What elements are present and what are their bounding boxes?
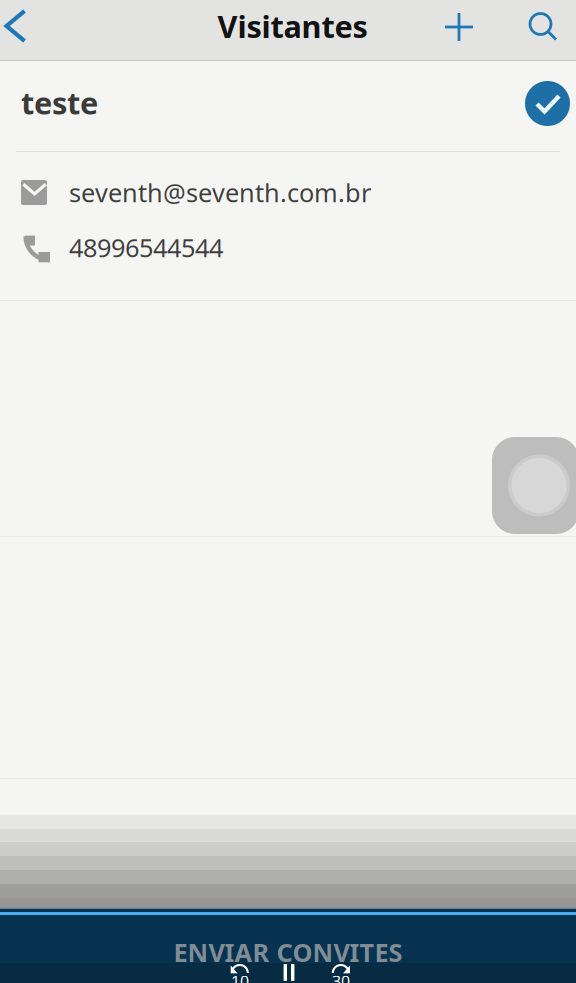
staticText: teste (21, 82, 98, 123)
button[interactable]: Search (515, 0, 576, 61)
button[interactable]: Pause (278, 964, 299, 983)
staticText: seventh@seventh.com.br (69, 176, 371, 209)
button[interactable]: Add (429, 0, 515, 61)
button[interactable]: ENVIAR CONVITES (0, 921, 576, 969)
button[interactable]: Confirmed (525, 81, 570, 131)
staticText: 48996544544 (69, 231, 223, 264)
button[interactable]: Skip forward 30 seconds (330, 964, 351, 983)
staticText: ENVIAR CONVITES (173, 935, 402, 969)
button[interactable]: Skip back 10 seconds (229, 964, 250, 983)
staticText: 30 (332, 971, 350, 983)
staticText: 10 (231, 971, 249, 983)
button[interactable]: Back (0, 0, 49, 61)
staticText: Visitantes (217, 6, 367, 46)
